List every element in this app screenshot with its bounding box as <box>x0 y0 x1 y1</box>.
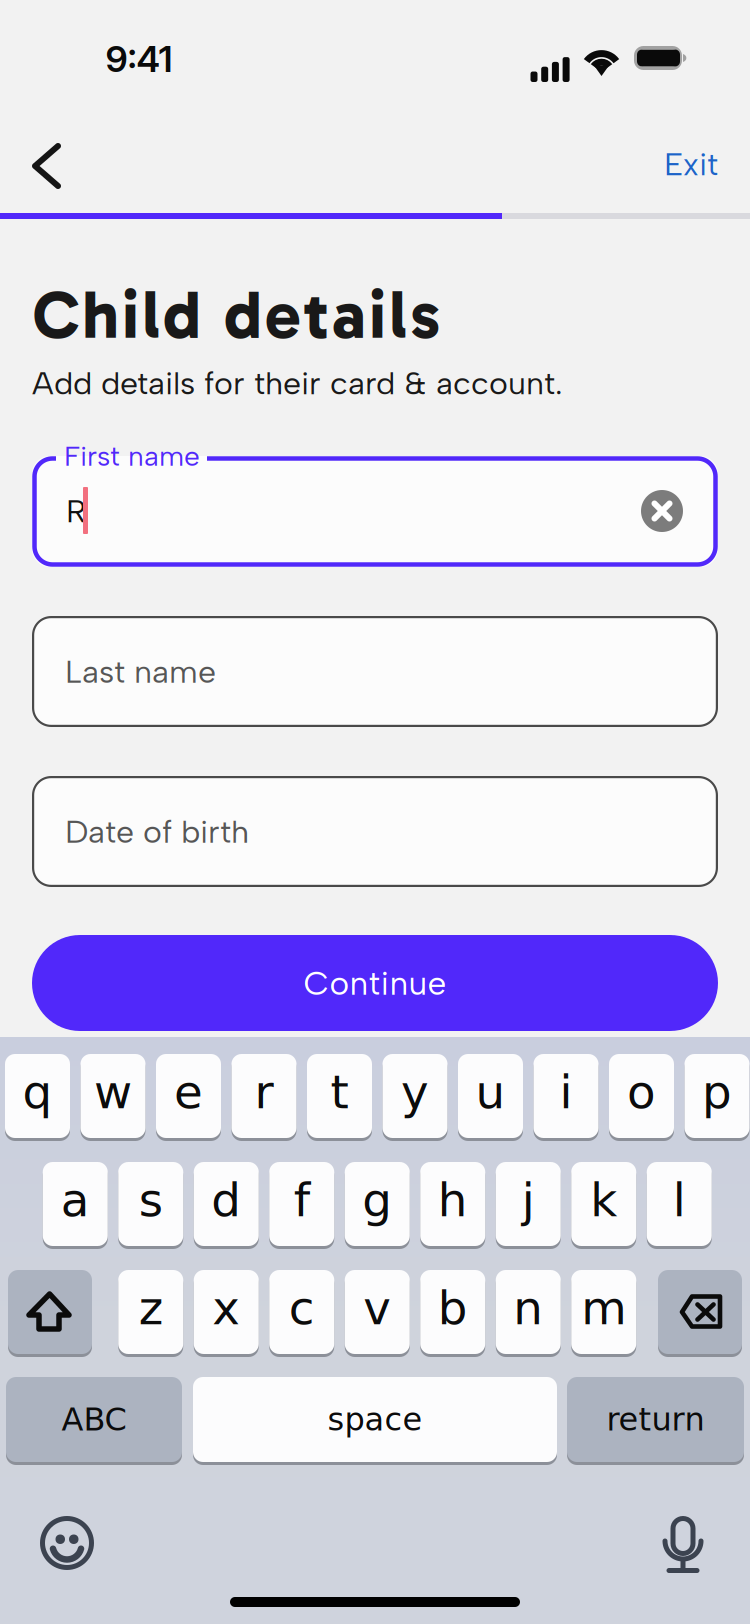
button[interactable]: s <box>118 1162 183 1249</box>
staticText: c <box>289 1281 315 1335</box>
staticText: i <box>559 1065 572 1119</box>
button[interactable]: q <box>5 1054 70 1141</box>
button[interactable]: v <box>345 1270 410 1357</box>
button[interactable]: space <box>193 1377 557 1465</box>
staticText: t <box>330 1065 348 1119</box>
staticText: w <box>94 1065 132 1119</box>
button[interactable]: Continue <box>32 935 718 1031</box>
staticText: d <box>211 1173 241 1227</box>
staticText: Last name <box>65 652 216 691</box>
button[interactable]: k <box>571 1162 636 1249</box>
button[interactable]: Last name <box>32 616 718 727</box>
button[interactable]: n <box>496 1270 561 1357</box>
button[interactable]: w <box>80 1054 145 1141</box>
button[interactable]: a <box>43 1162 108 1249</box>
button[interactable]: g <box>345 1162 410 1249</box>
button[interactable]: c <box>269 1270 334 1357</box>
button[interactable]: Shift <box>8 1270 92 1357</box>
staticText: z <box>139 1281 163 1335</box>
button[interactable]: return <box>567 1377 744 1465</box>
button[interactable]: x <box>194 1270 259 1357</box>
staticText: e <box>174 1065 203 1119</box>
button[interactable]: z <box>118 1270 183 1357</box>
button[interactable]: m <box>571 1270 636 1357</box>
staticText: p <box>702 1065 732 1119</box>
staticText: s <box>139 1173 163 1227</box>
button[interactable]: t <box>307 1054 372 1141</box>
staticText: b <box>438 1281 468 1335</box>
button[interactable]: h <box>420 1162 485 1249</box>
button[interactable]: Clear text <box>630 479 694 543</box>
staticText: space <box>327 1401 422 1438</box>
staticText: Add details for their card & account. <box>32 364 563 402</box>
staticText: u <box>475 1065 505 1119</box>
button[interactable]: j <box>496 1162 561 1249</box>
staticText: Child details <box>33 275 440 355</box>
staticText: a <box>61 1173 90 1227</box>
staticText: Continue <box>303 963 446 1003</box>
staticText: R <box>66 492 86 530</box>
staticText: l <box>673 1173 686 1227</box>
staticText: 9:41 <box>105 37 172 81</box>
staticText: x <box>212 1281 240 1335</box>
staticText: First name <box>64 439 200 473</box>
staticText: return <box>606 1401 704 1438</box>
button[interactable]: Dictate <box>643 1503 723 1583</box>
button[interactable]: l <box>647 1162 712 1249</box>
staticText: m <box>581 1281 626 1335</box>
button[interactable]: p <box>684 1054 749 1141</box>
staticText: y <box>401 1065 429 1119</box>
button[interactable]: e <box>156 1054 221 1141</box>
button[interactable]: r <box>231 1054 296 1141</box>
button[interactable]: Date of birth <box>32 776 718 887</box>
button[interactable]: y <box>382 1054 447 1141</box>
button[interactable]: Delete <box>658 1270 742 1357</box>
staticText: n <box>513 1281 543 1335</box>
staticText: Date of birth <box>65 812 249 851</box>
staticText: r <box>254 1065 273 1119</box>
staticText: f <box>294 1173 310 1227</box>
staticText: ABC <box>61 1401 126 1438</box>
staticText: j <box>522 1173 535 1227</box>
staticText: k <box>590 1173 617 1227</box>
button[interactable]: b <box>420 1270 485 1357</box>
button[interactable]: i <box>533 1054 598 1141</box>
button[interactable]: Exit <box>626 130 718 198</box>
staticText: o <box>627 1065 656 1119</box>
button[interactable]: u <box>458 1054 523 1141</box>
staticText: q <box>22 1065 52 1119</box>
staticText: g <box>362 1173 392 1227</box>
button[interactable]: Back <box>0 121 84 207</box>
button[interactable]: f <box>269 1162 334 1249</box>
button[interactable]: Emoji <box>27 1503 107 1583</box>
staticText: Exit <box>664 145 718 183</box>
button[interactable]: o <box>609 1054 674 1141</box>
staticText: v <box>363 1281 391 1335</box>
button[interactable]: d <box>194 1162 259 1249</box>
button[interactable]: ABC <box>6 1377 182 1465</box>
staticText: h <box>438 1173 468 1227</box>
